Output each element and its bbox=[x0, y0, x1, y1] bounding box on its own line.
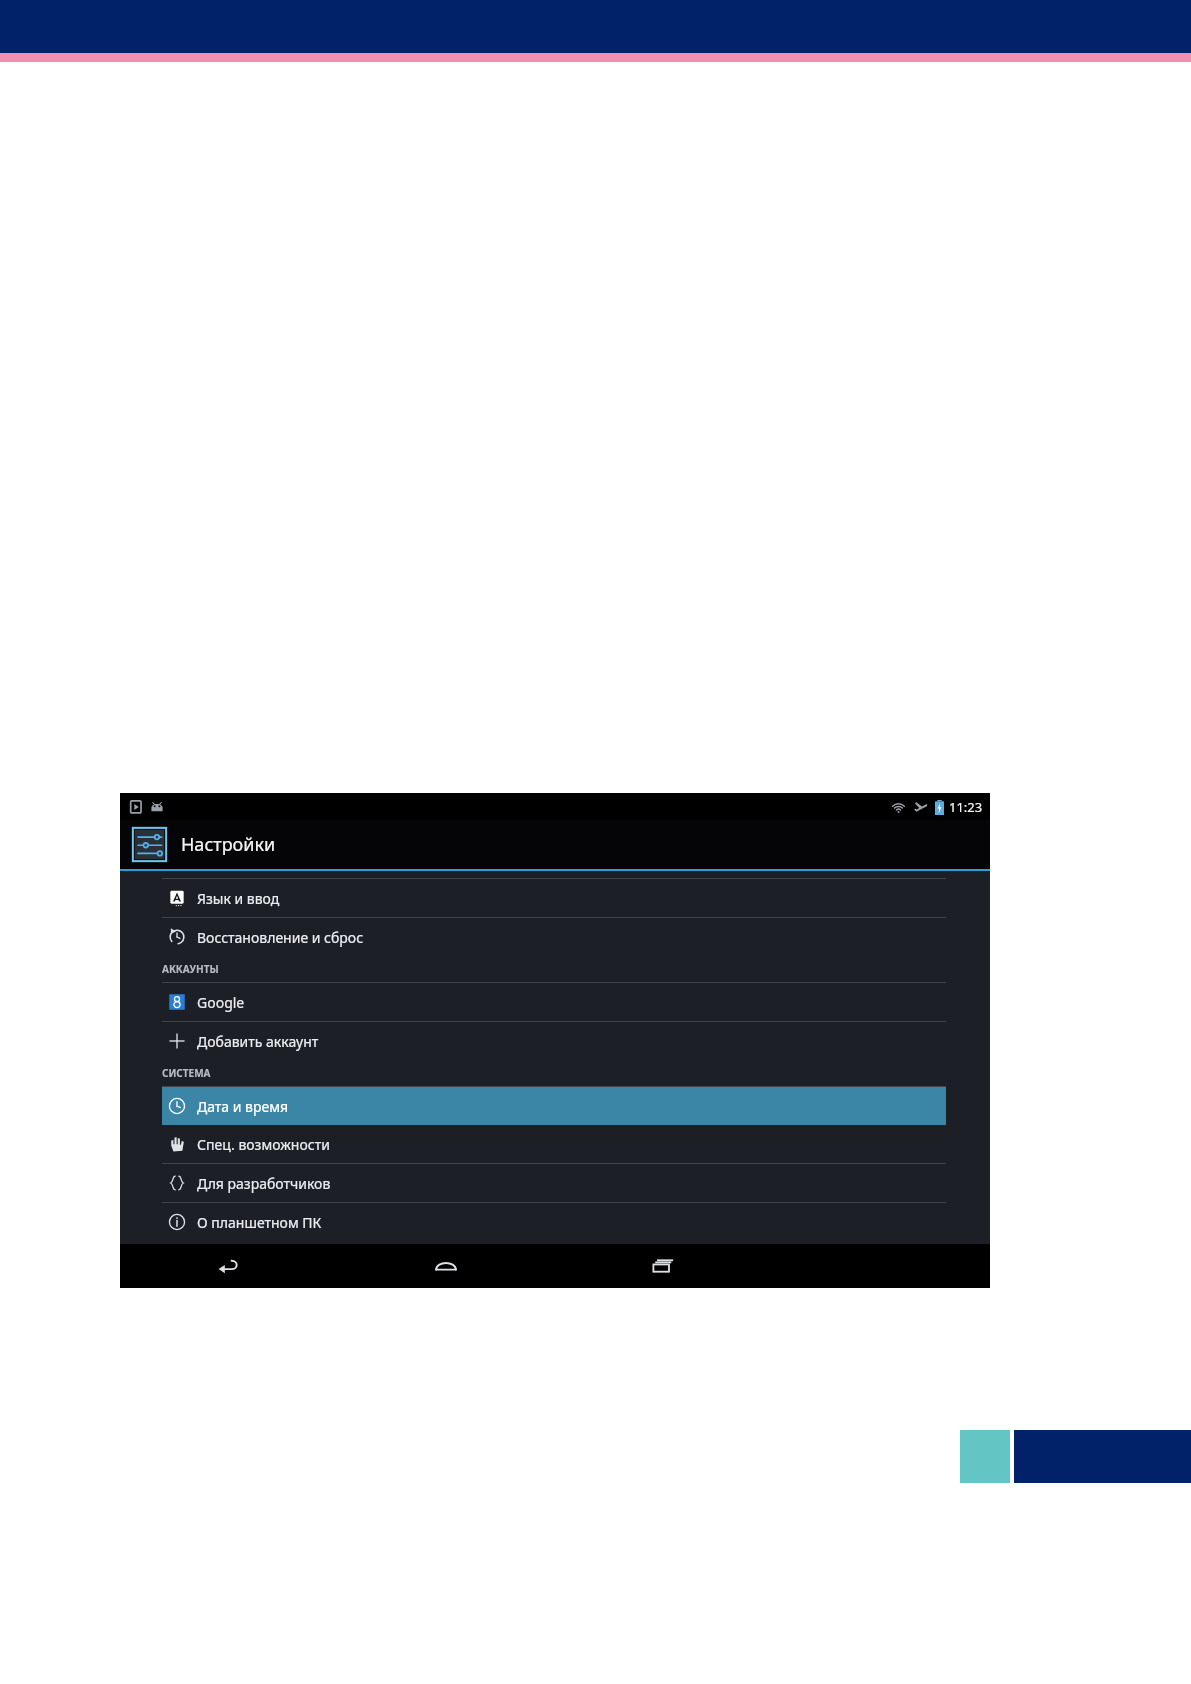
button[interactable]: Язык и ввод bbox=[120, 879, 990, 917]
staticText: Дата и время bbox=[197, 1097, 289, 1116]
button[interactable]: Google bbox=[120, 983, 990, 1021]
staticText: О планшетном ПК bbox=[197, 1213, 322, 1232]
staticText: Google bbox=[197, 993, 245, 1012]
staticText: Добавить аккаунт bbox=[197, 1032, 319, 1051]
button[interactable]: Дата и время bbox=[162, 1087, 946, 1125]
staticText: Язык и ввод bbox=[197, 889, 280, 908]
staticText: Для разработчиков bbox=[197, 1174, 331, 1193]
staticText: АККАУНТЫ bbox=[162, 962, 219, 976]
button[interactable]: Recent apps bbox=[554, 1244, 772, 1288]
staticText: Спец. возможности bbox=[197, 1135, 330, 1154]
staticText: СИСТЕМА bbox=[162, 1066, 211, 1080]
button[interactable]: О планшетном ПК bbox=[120, 1203, 990, 1241]
button[interactable]: Настройки bbox=[120, 820, 990, 869]
button[interactable]: Восстановление и сброс bbox=[120, 918, 990, 956]
staticText: Настройки bbox=[181, 832, 276, 857]
button[interactable]: Для разработчиков bbox=[120, 1164, 990, 1202]
button[interactable]: Home bbox=[337, 1244, 554, 1288]
button[interactable]: Back bbox=[120, 1244, 337, 1288]
button[interactable]: Спец. возможности bbox=[120, 1125, 990, 1163]
staticText: Восстановление и сброс bbox=[197, 928, 364, 947]
button[interactable]: Добавить аккаунт bbox=[120, 1022, 990, 1060]
staticText: 11:23 bbox=[949, 798, 983, 816]
